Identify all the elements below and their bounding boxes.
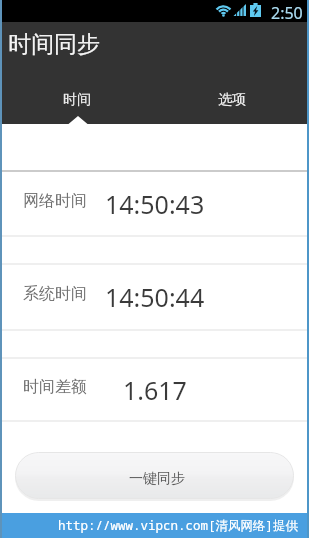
staticText: 网络时间 — [23, 191, 87, 211]
staticText: 14:50:43 — [105, 187, 205, 221]
staticText: 时间 — [63, 91, 91, 109]
other: Wi-Fi signal — [215, 4, 233, 17]
staticText: http://www.vipcn.com[清风网络]提供 — [58, 517, 299, 534]
other: Battery charging — [250, 3, 261, 17]
staticText: 1.617 — [123, 373, 187, 407]
staticText: 系统时间 — [23, 284, 87, 304]
staticText: 一键同步 — [129, 470, 185, 488]
button[interactable]: 系统时间 — [0, 265, 309, 329]
button[interactable]: 一键同步 — [15, 452, 294, 499]
button[interactable]: 时间差额 — [0, 359, 309, 420]
staticText: 时间同步 — [8, 30, 100, 59]
staticText: 时间差额 — [23, 377, 87, 397]
staticText: 选项 — [218, 91, 246, 109]
staticText: 14:50:44 — [105, 280, 205, 314]
button[interactable]: 网络时间 — [0, 172, 309, 235]
other: Mobile signal — [233, 4, 246, 16]
staticText: 2:50 — [271, 2, 303, 24]
button[interactable]: 选项 — [154, 80, 309, 119]
button[interactable]: 时间 — [0, 80, 154, 119]
